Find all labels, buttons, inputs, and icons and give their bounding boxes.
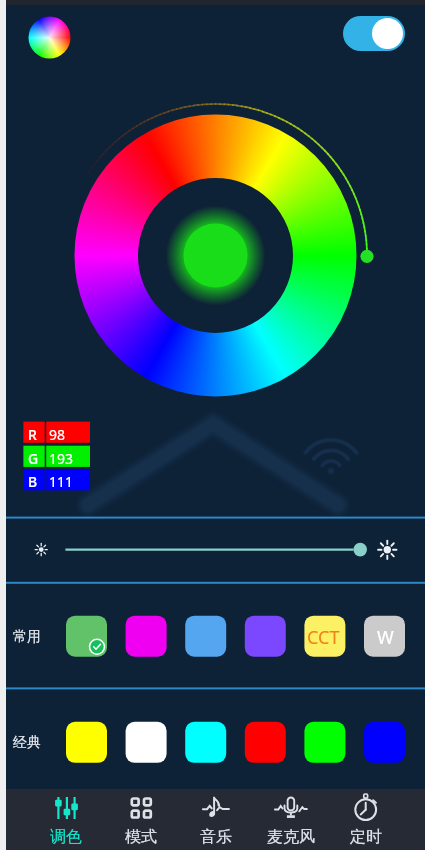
staticText: 定时: [350, 827, 382, 847]
button[interactable]: Favourite colour 6: [358, 610, 399, 651]
staticText: 98: [49, 425, 66, 444]
staticText: 111: [49, 472, 74, 491]
button[interactable]: Classic colour 1: [60, 716, 101, 757]
button[interactable]: 模式: [103, 789, 178, 850]
button[interactable]: Power toggle: [337, 10, 399, 45]
staticText: 模式: [125, 827, 157, 847]
button[interactable]: Classic colour 5: [298, 716, 339, 757]
staticText: 调色: [50, 827, 82, 847]
staticText: CCT: [307, 625, 340, 650]
staticText: B: [28, 472, 38, 491]
button[interactable]: Favourite colour 4: [239, 610, 280, 651]
staticText: 常用: [13, 628, 41, 646]
staticText: G: [28, 449, 39, 468]
button[interactable]: Classic colour 4: [239, 716, 280, 757]
staticText: R: [28, 425, 37, 444]
button[interactable]: Brightness slider: [53, 519, 367, 559]
button[interactable]: 麦克风: [253, 789, 328, 850]
button[interactable]: Classic colour 6: [358, 716, 399, 757]
button[interactable]: Classic colour 3: [179, 716, 220, 757]
button[interactable]: 定时: [328, 789, 403, 850]
staticText: 经典: [13, 734, 41, 752]
staticText: 193: [49, 449, 74, 468]
button[interactable]: Favourite colour 5: [298, 610, 339, 651]
staticText: 麦克风: [267, 827, 315, 847]
button[interactable]: Favourite colour 1: [60, 610, 101, 651]
button[interactable]: Favourite colour 2: [120, 610, 161, 651]
button[interactable]: Classic colour 2: [120, 716, 161, 757]
button[interactable]: 调色: [28, 789, 103, 850]
button[interactable]: 音乐: [178, 789, 253, 850]
button[interactable]: Color wheel picker: [68, 94, 352, 378]
staticText: W: [377, 625, 394, 650]
staticText: 音乐: [200, 827, 232, 847]
button[interactable]: Favourite colour 3: [179, 610, 220, 651]
button[interactable]: Color wheel: [22, 11, 64, 53]
